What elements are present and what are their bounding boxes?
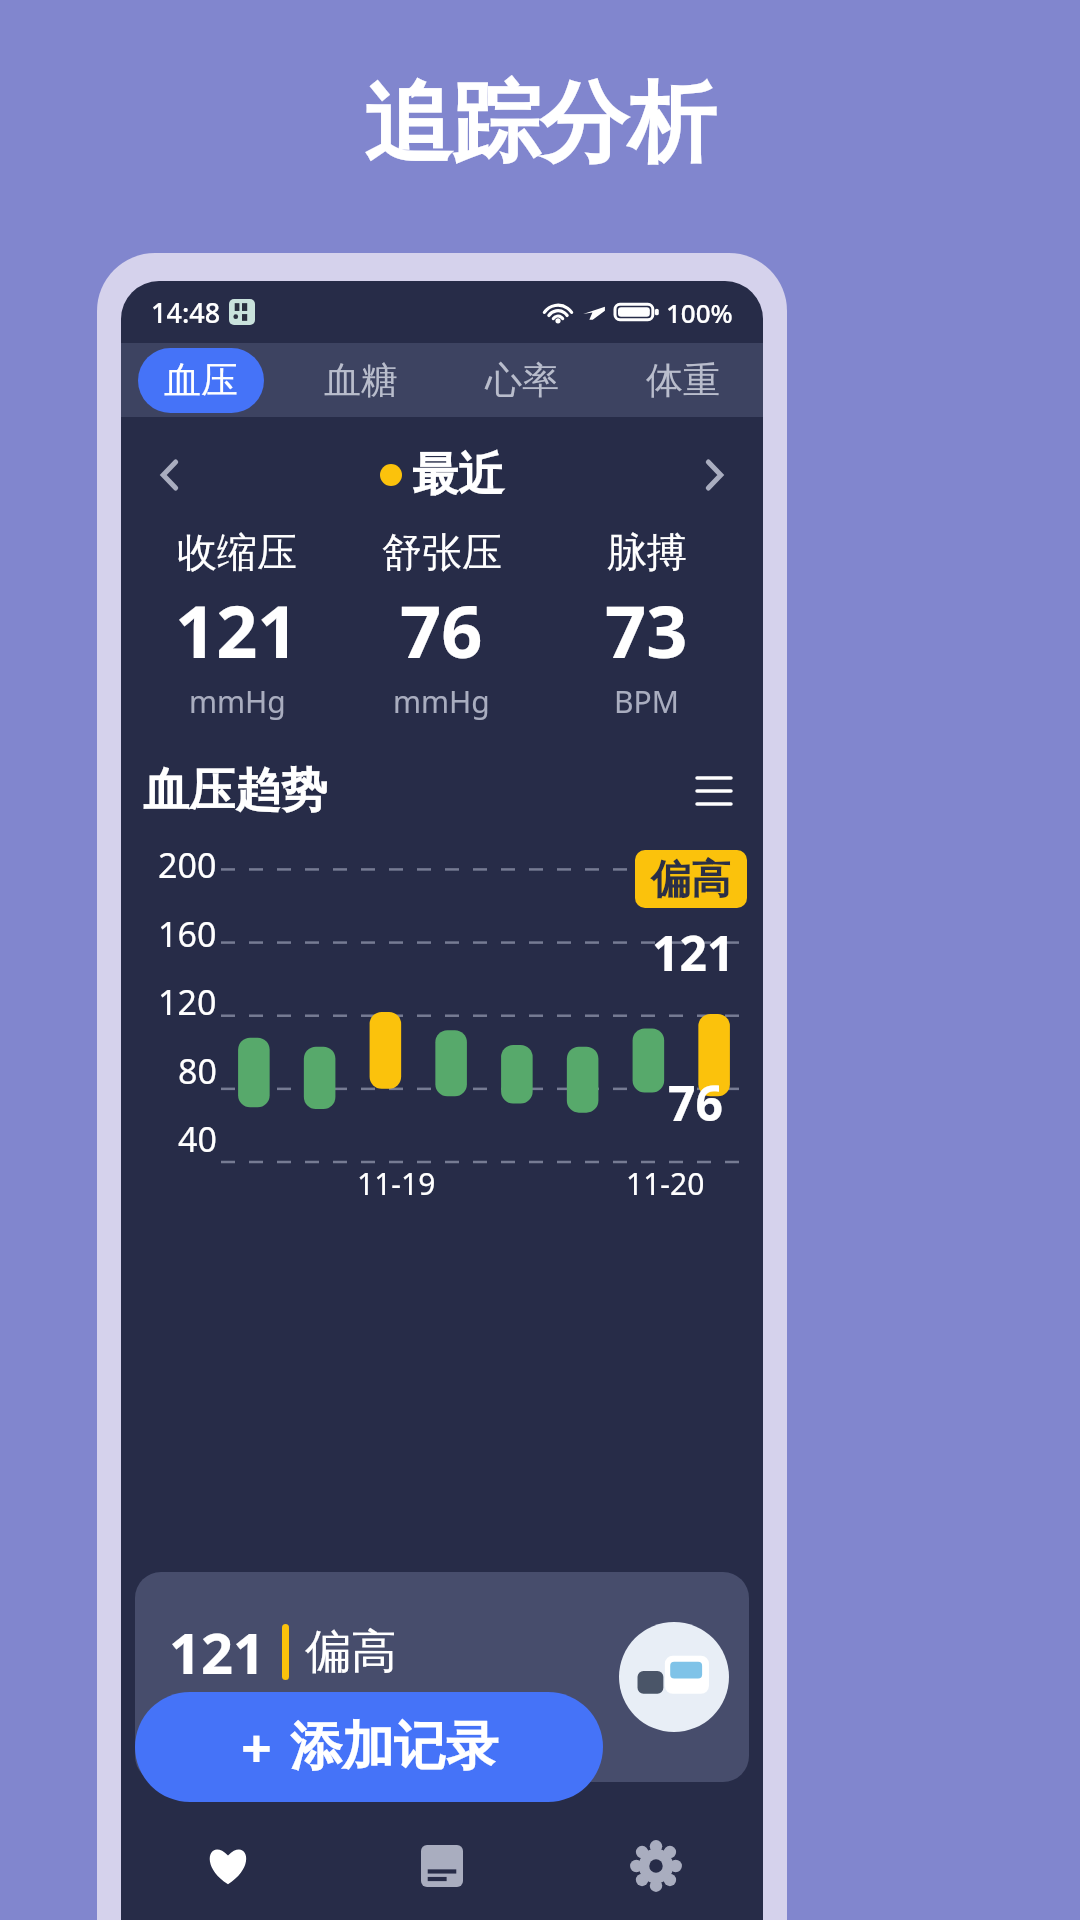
other: Device	[619, 1622, 729, 1732]
staticText: 121	[175, 581, 299, 679]
staticText: 121	[652, 920, 735, 985]
staticText: 121	[169, 1614, 266, 1690]
staticText: 心率	[485, 357, 559, 404]
staticText: 40	[178, 1116, 217, 1162]
button[interactable]: 收缩压	[135, 527, 339, 722]
staticText: 舒张压	[382, 527, 502, 577]
staticText: 血糖	[324, 357, 398, 404]
button[interactable]: Next	[685, 447, 741, 503]
staticText: 0,	[385, 1692, 422, 1752]
button[interactable]: Menu	[687, 764, 741, 818]
staticText: 追踪分析	[364, 68, 716, 179]
button[interactable]: Home	[121, 1812, 335, 1920]
button[interactable]: Records	[335, 1812, 549, 1920]
button[interactable]: Previous	[143, 447, 199, 503]
staticText: 100%	[666, 295, 733, 330]
staticText: 体重	[646, 357, 720, 404]
staticText: 76	[400, 581, 483, 679]
staticText: 脉搏	[607, 527, 687, 577]
staticText: 73	[605, 581, 688, 679]
button[interactable]: 脉搏	[544, 527, 749, 722]
staticText: 120	[158, 979, 217, 1025]
button[interactable]: 121	[135, 1572, 749, 1782]
staticText: +	[241, 1710, 272, 1784]
staticText: 最近	[412, 446, 504, 504]
staticText: 添加记录	[290, 1714, 498, 1780]
staticText: 血压	[164, 357, 238, 404]
staticText: 11-20	[626, 1163, 705, 1204]
staticText: mmHg	[189, 681, 286, 722]
button[interactable]: 血压	[138, 348, 264, 413]
staticText: 160	[158, 911, 217, 957]
button[interactable]: 心率	[459, 348, 585, 413]
staticText: 14:48	[151, 294, 221, 331]
staticText: 偏高	[305, 1623, 397, 1681]
staticText: BPM	[614, 681, 679, 722]
button[interactable]: 体重	[620, 348, 746, 413]
staticText: 80	[178, 1048, 217, 1094]
staticText: 偏高	[651, 854, 731, 904]
staticText: 血压趋势	[143, 762, 327, 820]
button[interactable]: 偏高	[635, 850, 747, 908]
staticText: mmHg	[393, 681, 490, 722]
button[interactable]: 血糖	[298, 348, 424, 413]
button[interactable]: Settings	[549, 1812, 763, 1920]
button[interactable]: 舒张压	[339, 527, 544, 722]
button[interactable]: +	[135, 1692, 603, 1802]
staticText: 收缩压	[177, 527, 297, 577]
staticText: 200	[158, 842, 217, 888]
staticText: 11-19	[357, 1163, 436, 1204]
staticText: 76	[668, 1070, 723, 1135]
